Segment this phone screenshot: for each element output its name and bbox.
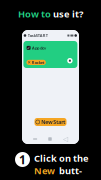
staticText: use it?	[53, 8, 83, 20]
staticText: ◁	[63, 135, 68, 143]
staticText: ✕	[27, 60, 30, 65]
staticText: App dev	[32, 45, 46, 50]
staticText: ✓	[27, 46, 30, 50]
staticText: 1	[19, 151, 26, 167]
button[interactable]: New Start	[34, 118, 66, 126]
staticText: Rocket	[32, 60, 45, 65]
staticText: How to	[18, 8, 53, 20]
staticText: button.	[59, 164, 82, 180]
staticText: New Start	[34, 164, 59, 180]
staticText: New Start	[41, 118, 65, 126]
staticText: Click on the	[34, 152, 89, 164]
staticText: TaskSTART	[28, 33, 48, 38]
